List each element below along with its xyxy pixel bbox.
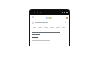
button[interactable]: Menu [32,16,34,18]
button[interactable] [38,26,42,29]
button[interactable] [62,26,65,29]
button[interactable] [33,26,36,29]
button[interactable] [56,26,60,29]
button[interactable] [30,21,69,24]
button[interactable] [50,26,54,29]
button[interactable] [44,26,48,29]
